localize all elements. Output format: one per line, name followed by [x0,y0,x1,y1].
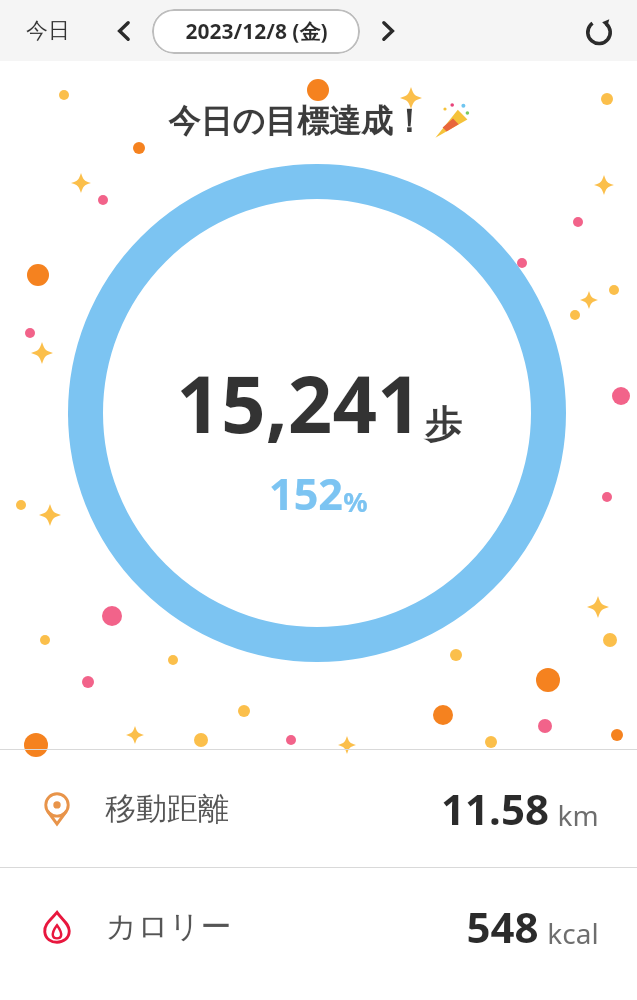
staticText: 今日 [26,17,70,45]
staticText: km [557,796,599,834]
staticText: 152 [269,464,343,523]
button[interactable]: 移動距離 [0,750,637,867]
staticText: % [343,483,368,520]
staticText: kcal [547,914,599,952]
staticText: 548 [466,898,539,955]
staticText: 今日の目標達成！ [168,101,425,141]
staticText: 15,241 [176,350,422,456]
button[interactable]: 今日 [18,11,78,51]
button[interactable]: 次の日 [366,9,410,53]
button[interactable]: 2023/12/8 (金) [152,9,360,54]
staticText: カロリー [105,907,232,946]
button[interactable]: 前の日 [102,9,146,53]
button[interactable]: カロリー [0,868,637,985]
staticText: 歩 [425,401,462,448]
staticText: 11.58 [441,780,549,837]
button[interactable]: 更新 [575,7,623,55]
staticText: 移動距離 [105,789,229,828]
staticText: 2023/12/8 (金) [185,17,328,46]
